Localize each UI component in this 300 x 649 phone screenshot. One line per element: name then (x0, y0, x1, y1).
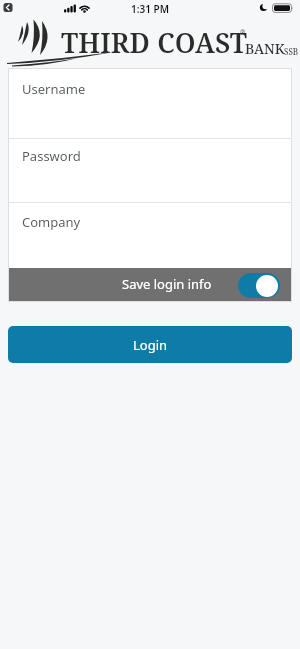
staticText: 1:31 PM (131, 2, 169, 16)
staticText: Login (133, 336, 168, 354)
button[interactable]: Company (8, 203, 292, 268)
staticText: Password (22, 147, 81, 165)
staticText: ® (240, 28, 246, 37)
staticText: BANK (245, 39, 285, 58)
staticText: Username (22, 80, 86, 98)
button[interactable]: Save login info (8, 268, 292, 302)
button[interactable]: Password (8, 139, 292, 202)
staticText: THIRD COAST (61, 24, 248, 61)
button[interactable] (238, 273, 280, 298)
staticText: Save login info (122, 275, 212, 293)
button[interactable]: Username (8, 68, 292, 138)
button[interactable]: Login (8, 326, 292, 363)
staticText: Company (22, 213, 81, 231)
staticText: SSB (284, 46, 299, 57)
